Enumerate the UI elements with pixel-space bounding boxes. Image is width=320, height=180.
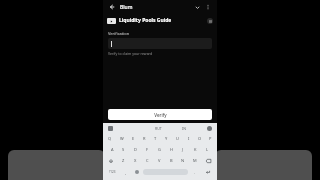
button[interactable]: S (118, 144, 129, 155)
staticText: S (122, 147, 125, 152)
staticText: C (146, 158, 149, 163)
staticText: D (134, 147, 137, 152)
staticText: B (170, 158, 173, 163)
staticText: V (158, 158, 161, 163)
button[interactable]: Verify (108, 109, 212, 120)
button[interactable]: X (129, 155, 141, 166)
button[interactable]: Shift (104, 155, 118, 166)
staticText: R (143, 136, 146, 141)
staticText: . (194, 170, 196, 175)
button[interactable]: Comma (120, 166, 131, 178)
staticText: I (188, 136, 190, 141)
staticText: G (158, 147, 161, 152)
staticText: Verify (154, 112, 167, 118)
button[interactable]: O (194, 133, 205, 144)
button[interactable]: I (183, 133, 194, 144)
button[interactable]: A (107, 144, 118, 155)
button[interactable] (108, 38, 212, 49)
staticText: K (194, 147, 197, 152)
staticText: T (154, 136, 157, 141)
staticText: Y (165, 136, 168, 141)
button[interactable]: R (139, 133, 150, 144)
staticText: A (111, 147, 114, 152)
button[interactable]: Y (161, 133, 172, 144)
button[interactable]: W (116, 133, 128, 144)
button[interactable]: Liquidity Pools Guide (107, 14, 213, 27)
button[interactable]: N (177, 155, 189, 166)
staticText: IN (182, 126, 186, 131)
staticText: M (193, 158, 197, 163)
button[interactable]: J (177, 144, 189, 155)
button[interactable]: Emoji (131, 166, 142, 178)
button[interactable]: T (150, 133, 161, 144)
button[interactable]: L (201, 144, 213, 155)
staticText: RUT (155, 126, 162, 131)
staticText: H (170, 147, 173, 152)
staticText: N (181, 158, 185, 163)
button[interactable]: More options (203, 2, 213, 12)
staticText: X (134, 158, 137, 163)
button[interactable]: F (141, 144, 153, 155)
button[interactable]: E (128, 133, 139, 144)
button[interactable]: C (141, 155, 153, 166)
button[interactable]: K (189, 144, 201, 155)
button[interactable]: B (165, 155, 177, 166)
button[interactable]: V (153, 155, 165, 166)
staticText: W (120, 136, 124, 141)
button[interactable]: ?123 (105, 166, 120, 178)
staticText: Verification (108, 31, 130, 36)
button[interactable]: Expand (192, 2, 202, 12)
button[interactable]: Gboard menu (108, 126, 113, 131)
staticText: Z (122, 158, 125, 163)
button[interactable]: U (172, 133, 183, 144)
staticText: F (146, 147, 149, 152)
button[interactable]: P (205, 133, 216, 144)
button[interactable]: Options (207, 18, 213, 24)
staticText: J (182, 147, 184, 152)
staticText: O (198, 136, 202, 141)
staticText: , (125, 170, 127, 175)
staticText: Q (108, 136, 112, 141)
staticText: Blum (120, 4, 133, 11)
button[interactable]: Voice input (207, 126, 212, 131)
staticText: ?123 (109, 170, 116, 174)
staticText: U (176, 136, 179, 141)
staticText: L (206, 147, 209, 152)
button[interactable]: Backspace (201, 155, 216, 166)
button[interactable]: G (153, 144, 165, 155)
button[interactable]: Z (118, 155, 129, 166)
button[interactable]: Q (104, 133, 116, 144)
button[interactable]: Back (107, 2, 117, 12)
button[interactable]: H (165, 144, 177, 155)
button[interactable]: Enter (200, 166, 215, 178)
staticText: P (209, 136, 212, 141)
button[interactable]: D (129, 144, 141, 155)
staticText: Liquidity Pools Guide (119, 17, 172, 24)
button[interactable]: M (189, 155, 201, 166)
staticText: Verify to claim your reward (108, 51, 153, 56)
staticText: E (132, 136, 135, 141)
